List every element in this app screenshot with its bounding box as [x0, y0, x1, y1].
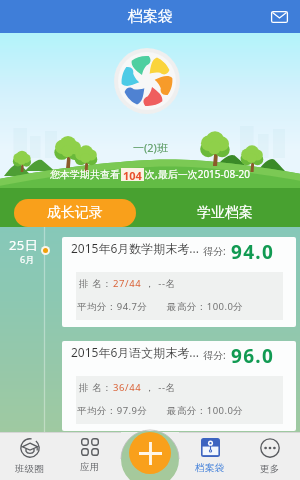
staticText: 6月 — [20, 253, 35, 265]
staticText: 得分: — [203, 244, 226, 258]
staticText: 最高分：100.0分 — [167, 300, 244, 313]
button[interactable]: Add — [129, 432, 171, 474]
staticText: 36/44 — [113, 381, 142, 394]
staticText: 96.0 — [231, 343, 275, 369]
button[interactable]: 应用 — [60, 432, 120, 480]
staticText: 更多 — [260, 463, 280, 475]
staticText: 27/44 — [113, 277, 142, 290]
staticText: 您本学期共查看 — [50, 168, 120, 181]
staticText: 班级圈 — [15, 463, 45, 475]
staticText: 2015年6月数学期末考... — [71, 240, 201, 256]
staticText: 平均分：97.9分 — [77, 404, 148, 417]
staticText: 次,最后一次2015-08-20 — [145, 167, 250, 181]
button[interactable]: 2015年6月数学期末考... — [62, 237, 296, 327]
staticText: 一(2)班 — [133, 140, 168, 155]
button[interactable]: 学业档案 — [150, 193, 300, 232]
button[interactable]: 2015年6月语文期末考... — [62, 341, 296, 431]
staticText: 平均分：94.7分 — [77, 300, 148, 313]
staticText: 得分: — [203, 348, 226, 362]
staticText: 应用 — [80, 461, 100, 473]
staticText: ， --名 — [142, 277, 176, 290]
staticText: 档案袋 — [195, 462, 225, 474]
staticText: 2015年6月语文期末考... — [71, 344, 201, 360]
staticText: 94.0 — [231, 239, 275, 265]
staticText: 25日 — [9, 236, 39, 254]
staticText: 排 名： — [79, 381, 113, 394]
button[interactable]: 班级圈 — [0, 432, 60, 480]
button[interactable]: Messages — [266, 4, 292, 30]
staticText: ， --名 — [142, 381, 176, 394]
button[interactable]: 更多 — [240, 432, 300, 480]
staticText: 档案袋 — [128, 7, 173, 26]
staticText: 学业档案 — [197, 204, 253, 222]
staticText: 104 — [123, 168, 142, 181]
button[interactable]: 成长记录 — [14, 199, 136, 227]
staticText: 最高分：100.0分 — [167, 404, 244, 417]
staticText: 排 名： — [79, 277, 113, 290]
staticText: 成长记录 — [47, 204, 103, 222]
button[interactable]: 档案袋 — [180, 432, 240, 480]
